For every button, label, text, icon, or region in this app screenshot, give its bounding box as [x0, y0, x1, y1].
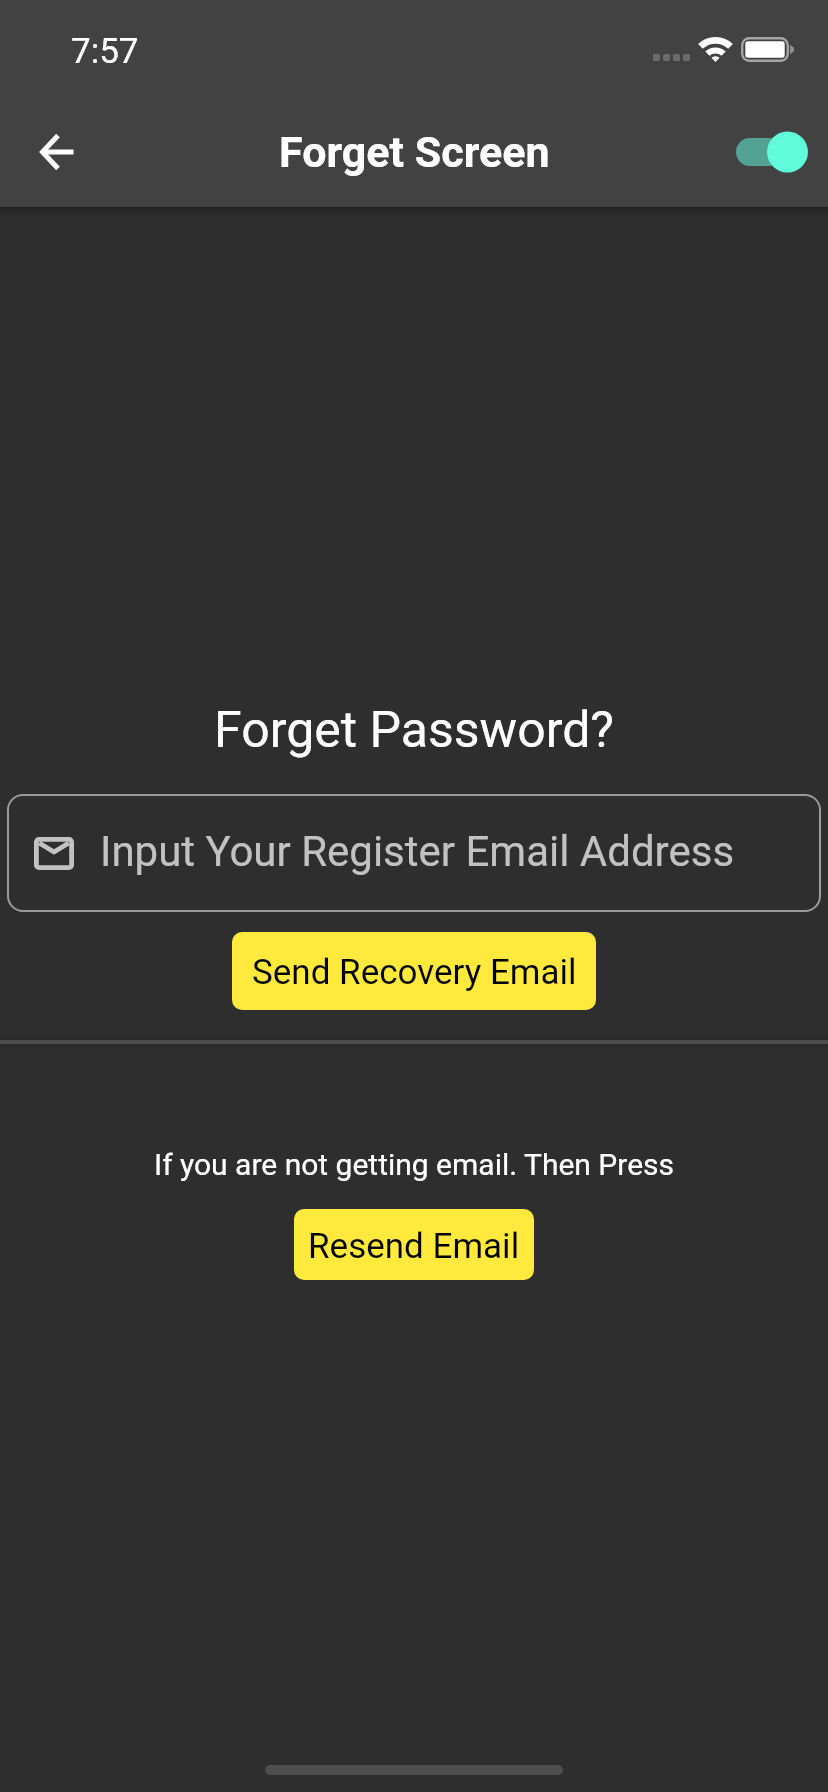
button[interactable]: Toggle dark mode [710, 108, 828, 196]
staticText: Send Recovery Email [252, 952, 577, 993]
staticText: Forget Password? [0, 701, 828, 760]
staticText: 7:57 [71, 31, 139, 72]
staticText: If you are not getting email. Then Press [0, 1147, 828, 1182]
button[interactable]: Send Recovery Email [232, 932, 596, 1010]
button[interactable]: Resend Email [294, 1209, 534, 1280]
button[interactable]: Back [17, 115, 97, 189]
staticText: Forget Screen [279, 127, 550, 177]
staticText: Resend Email [308, 1226, 520, 1267]
button[interactable]: Input Your Register Email Address [7, 794, 821, 912]
staticText: Input Your Register Email Address [100, 827, 735, 876]
